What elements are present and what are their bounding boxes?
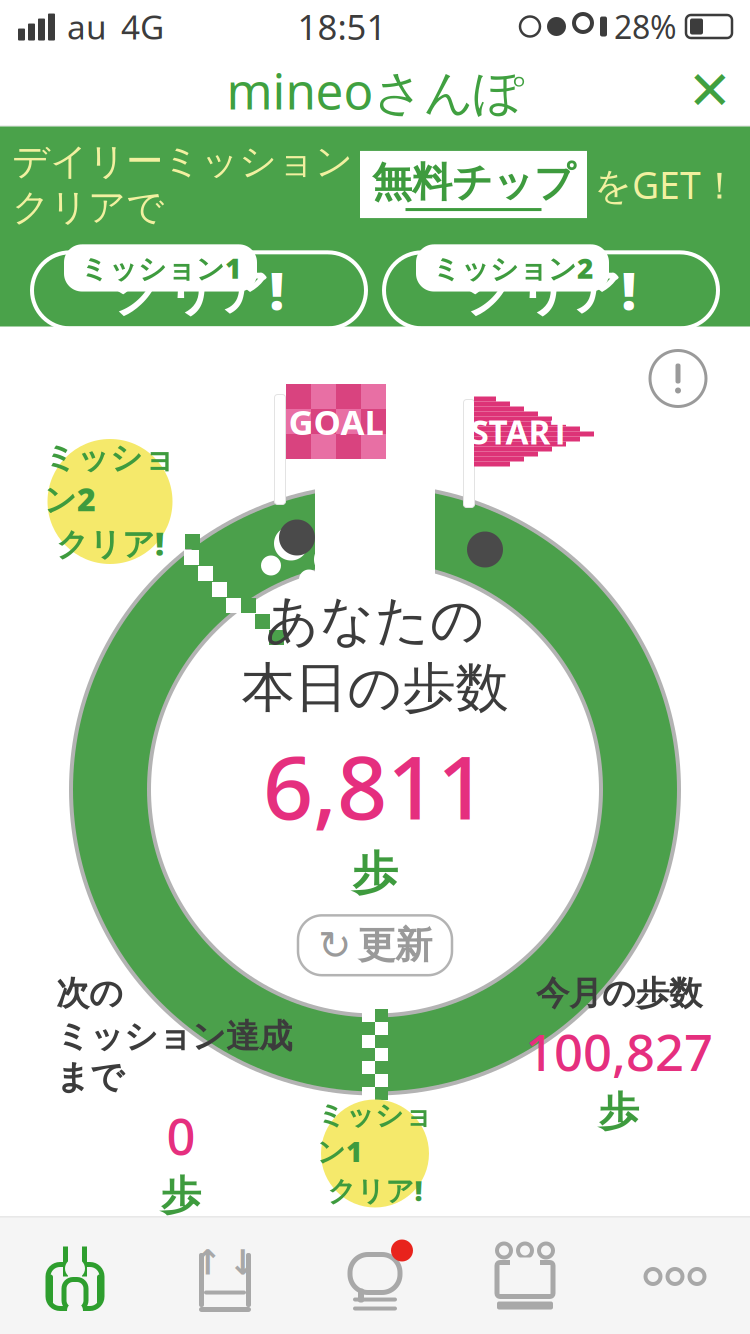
staticText: 歩 bbox=[599, 1087, 639, 1136]
staticText: ミッション2 bbox=[432, 249, 593, 287]
button[interactable]: コミュニティ bbox=[300, 1217, 450, 1334]
staticText: 0 bbox=[166, 1102, 195, 1169]
staticText: クリア! bbox=[113, 257, 284, 324]
staticText: ミッション1 bbox=[80, 249, 241, 287]
button[interactable]: ヘルプ bbox=[642, 342, 714, 414]
staticText: 6,811 bbox=[263, 727, 487, 844]
staticText: mineoさんぽ bbox=[226, 58, 523, 123]
button[interactable]: 無料チップ bbox=[360, 151, 587, 218]
staticText: ↓ bbox=[228, 1243, 257, 1282]
button[interactable]: 閉じる bbox=[670, 54, 750, 126]
staticText: 更新 bbox=[358, 922, 432, 968]
staticText: クリア! bbox=[56, 522, 164, 565]
staticText: 18:51 bbox=[297, 3, 386, 49]
staticText: GOAL bbox=[288, 398, 383, 444]
staticText: ミッション2 bbox=[44, 438, 176, 520]
staticText: をGET！ bbox=[594, 160, 738, 209]
staticText: 次の bbox=[56, 973, 123, 1014]
button[interactable]: クリア! bbox=[32, 244, 366, 336]
button[interactable]: クリア! bbox=[384, 244, 718, 336]
staticText: ↻ bbox=[318, 923, 352, 968]
staticText: 100,827 bbox=[525, 1018, 713, 1085]
staticText: au bbox=[67, 4, 107, 49]
staticText: ↑ bbox=[193, 1243, 222, 1282]
button[interactable]: ↻ bbox=[298, 915, 452, 975]
button[interactable]: ホーム bbox=[0, 1217, 150, 1334]
button[interactable]: その他 bbox=[600, 1217, 750, 1334]
staticText: ミッション達成まで bbox=[56, 1016, 292, 1098]
staticText: クリア! bbox=[465, 257, 636, 324]
staticText: ✕ bbox=[687, 60, 732, 121]
staticText: クリア! bbox=[327, 1172, 422, 1209]
staticText: 本日の歩数 bbox=[241, 655, 508, 721]
button[interactable]: データ bbox=[150, 1217, 300, 1334]
staticText: 4G bbox=[121, 4, 164, 49]
staticText: デイリーミッションクリアで bbox=[12, 139, 353, 230]
staticText: 28% bbox=[614, 5, 677, 48]
staticText: あなたの bbox=[265, 588, 485, 653]
staticText: 歩 bbox=[161, 1171, 201, 1220]
staticText: 今月の歩数 bbox=[536, 973, 702, 1014]
staticText: 無料チップ bbox=[372, 158, 575, 207]
staticText: START bbox=[470, 409, 569, 454]
staticText: 歩 bbox=[352, 846, 397, 901]
button[interactable]: ランキング bbox=[450, 1217, 600, 1334]
staticText: ミッション1 bbox=[317, 1098, 433, 1170]
